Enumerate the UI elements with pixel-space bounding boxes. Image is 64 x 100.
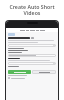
button[interactable] [8, 62, 56, 65]
button[interactable]: Cancel [32, 70, 56, 74]
button[interactable] [8, 44, 56, 47]
button[interactable]: Tab [8, 33, 15, 36]
button[interactable]: Submit [8, 70, 31, 74]
staticText: Create Auto Short Videos [9, 3, 55, 17]
button[interactable] [6, 28, 58, 32]
button[interactable] [8, 54, 56, 57]
